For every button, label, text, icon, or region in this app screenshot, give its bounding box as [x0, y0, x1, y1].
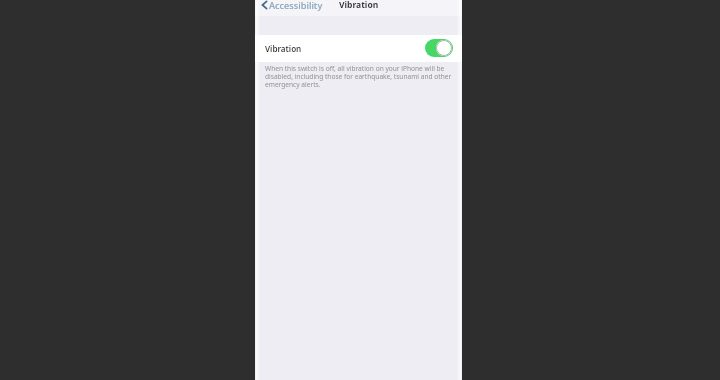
staticText: Vibration [339, 0, 379, 11]
staticText: Vibration [265, 43, 302, 54]
button[interactable]: Vibration [255, 35, 462, 62]
button[interactable]: Vibration, on [425, 39, 453, 57]
staticText: When this switch is off, all vibration o… [265, 64, 454, 89]
staticText: Accessibility [269, 0, 323, 12]
button[interactable]: Back to Accessibility [255, 0, 329, 13]
